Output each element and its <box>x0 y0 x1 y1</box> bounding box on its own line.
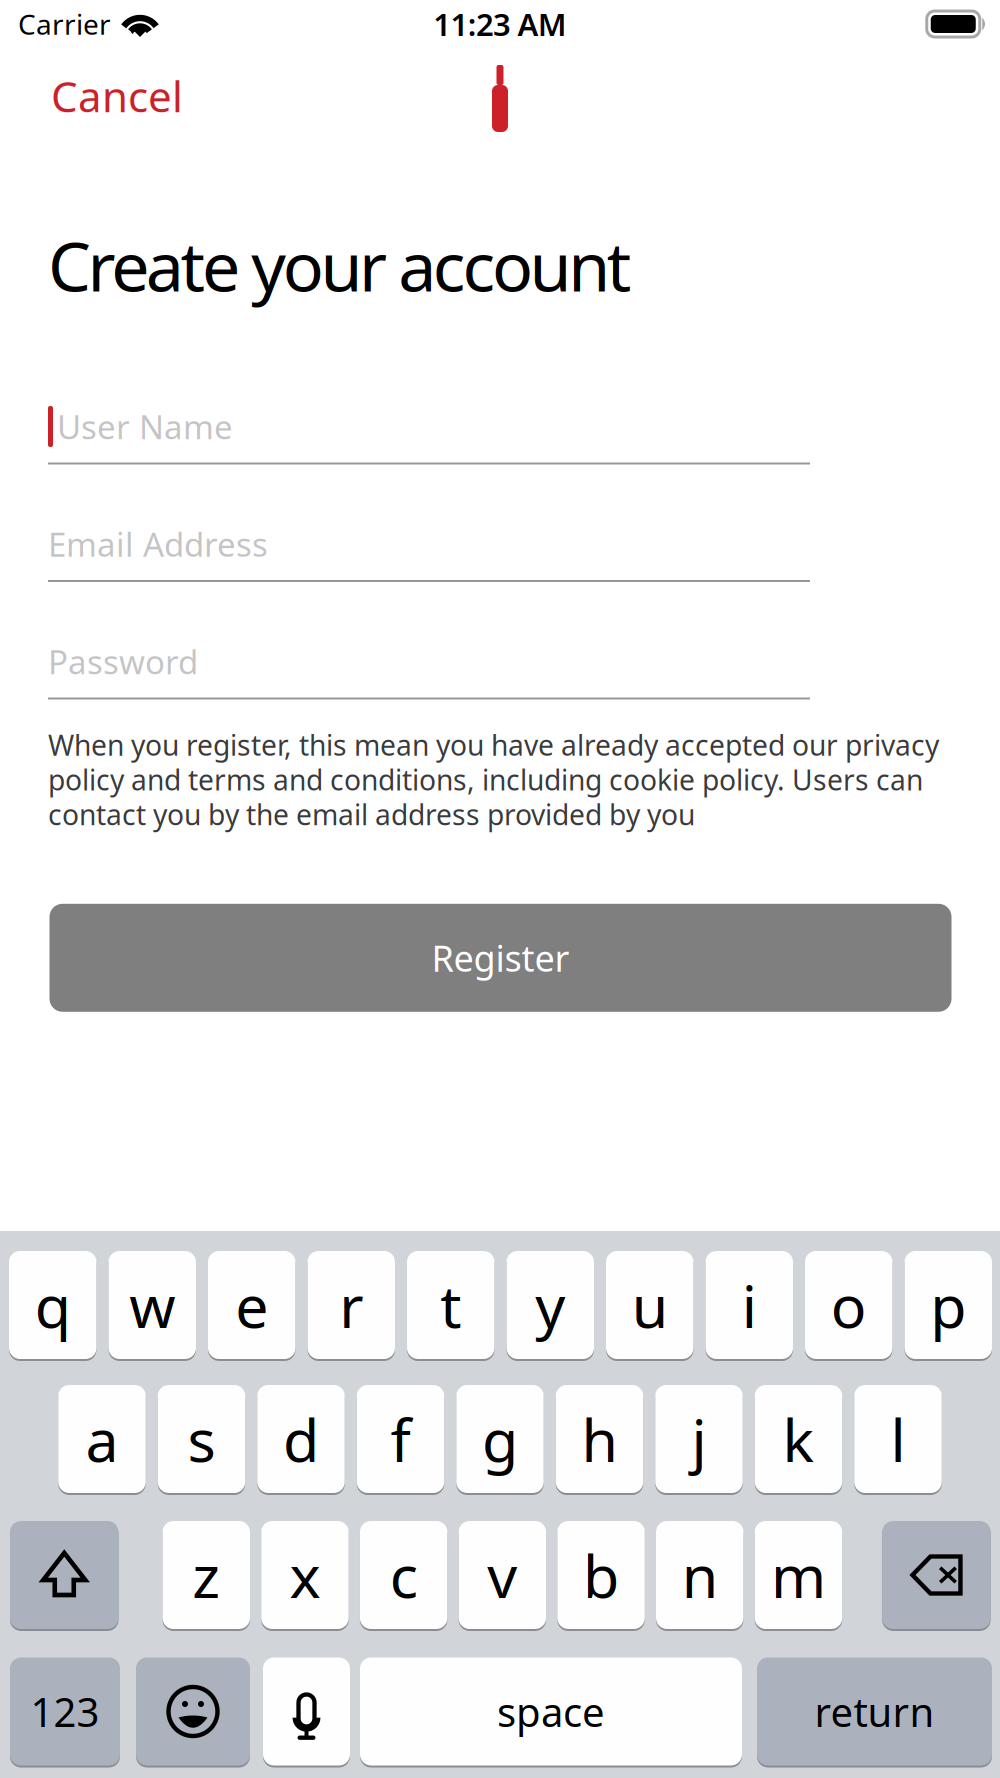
button[interactable]: e <box>208 1251 295 1359</box>
button[interactable]: y <box>506 1251 594 1359</box>
button[interactable]: t <box>407 1251 494 1359</box>
button[interactable]: g <box>456 1385 544 1493</box>
staticText: k <box>782 1400 814 1478</box>
staticText: 123 <box>30 1685 99 1738</box>
button[interactable]: o <box>805 1251 892 1359</box>
button[interactable]: d <box>257 1385 345 1493</box>
staticText: Carrier <box>18 5 111 43</box>
staticText: Email Address <box>48 522 268 566</box>
staticText: v <box>487 1536 517 1614</box>
staticText: y <box>535 1266 565 1344</box>
button[interactable]: return <box>757 1657 992 1765</box>
staticText: a <box>85 1400 118 1478</box>
button[interactable]: j <box>655 1385 743 1493</box>
staticText: i <box>742 1266 757 1344</box>
button[interactable]: m <box>755 1521 842 1629</box>
staticText: return <box>814 1685 934 1738</box>
button[interactable]: space <box>360 1657 742 1765</box>
staticText: z <box>192 1536 220 1614</box>
staticText: u <box>632 1266 668 1344</box>
staticText: t <box>440 1266 461 1344</box>
staticText: Cancel <box>51 68 183 124</box>
staticText: When you register, this mean you have al… <box>48 727 939 832</box>
button[interactable]: b <box>557 1521 645 1629</box>
button[interactable]: Dictate <box>263 1657 350 1765</box>
staticText: User Name <box>57 405 233 448</box>
staticText: b <box>583 1536 619 1614</box>
button[interactable]: Emoji <box>136 1657 250 1765</box>
staticText: e <box>235 1266 268 1344</box>
button[interactable]: c <box>360 1521 447 1629</box>
button[interactable]: z <box>162 1521 250 1629</box>
staticText: d <box>283 1400 319 1478</box>
button[interactable]: Register <box>48 904 950 1012</box>
staticText: h <box>581 1400 617 1478</box>
button[interactable]: l <box>854 1385 942 1493</box>
button[interactable]: x <box>261 1521 349 1629</box>
staticText: m <box>771 1536 826 1614</box>
staticText: x <box>289 1536 320 1614</box>
staticText: p <box>930 1266 966 1344</box>
staticText: f <box>390 1400 410 1478</box>
staticText: r <box>339 1266 363 1344</box>
staticText: n <box>682 1536 718 1614</box>
button[interactable]: k <box>755 1385 842 1493</box>
staticText: l <box>890 1400 905 1478</box>
staticText: Password <box>48 640 198 683</box>
button[interactable]: u <box>606 1251 693 1359</box>
staticText: j <box>691 1400 706 1478</box>
staticText: w <box>129 1266 175 1344</box>
staticText: c <box>390 1536 418 1614</box>
button[interactable]: i <box>705 1251 793 1359</box>
button[interactable]: s <box>158 1385 245 1493</box>
button[interactable]: r <box>307 1251 395 1359</box>
button[interactable]: Shift <box>10 1521 118 1629</box>
button[interactable]: a <box>58 1385 146 1493</box>
staticText: 11:23 AM <box>433 3 567 45</box>
button[interactable]: h <box>556 1385 643 1493</box>
button[interactable]: p <box>904 1251 992 1359</box>
button[interactable]: f <box>357 1385 444 1493</box>
button[interactable]: 123 <box>10 1657 120 1765</box>
staticText: o <box>831 1266 867 1344</box>
button[interactable]: Delete <box>882 1521 991 1629</box>
button[interactable]: n <box>656 1521 743 1629</box>
staticText: space <box>497 1685 605 1738</box>
button[interactable]: Cancel <box>0 48 191 144</box>
staticText: s <box>187 1400 215 1478</box>
button[interactable]: w <box>108 1251 196 1359</box>
staticText: Create your account <box>48 220 632 310</box>
staticText: Register <box>431 934 569 982</box>
button[interactable]: q <box>9 1251 96 1359</box>
staticText: q <box>35 1266 71 1344</box>
staticText: g <box>482 1400 518 1478</box>
button[interactable]: v <box>459 1521 546 1629</box>
